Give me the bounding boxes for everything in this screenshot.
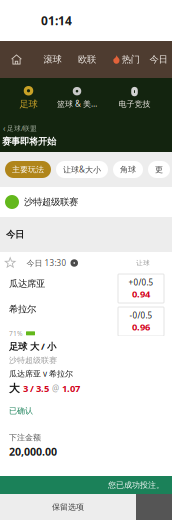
- button[interactable]: 热门: [103, 41, 149, 78]
- staticText: 欧联: [78, 54, 96, 65]
- staticText: 让球: [136, 259, 150, 267]
- button[interactable]: 篮球 & 美…: [57, 78, 97, 118]
- staticText: 让球&大小: [63, 164, 101, 175]
- staticText: 赛事即将开始: [2, 136, 56, 147]
- staticText: 大: [9, 382, 20, 395]
- button[interactable]: 首页: [0, 41, 34, 78]
- staticText: 71%: [9, 329, 23, 338]
- button[interactable]: 沙特超级联赛: [0, 187, 172, 217]
- button[interactable]: 主要玩法: [5, 161, 51, 178]
- staticText: @: [52, 383, 59, 394]
- staticText: ‹: [3, 123, 5, 134]
- button[interactable]: 更: [148, 161, 170, 178]
- staticText: 滚球: [43, 54, 61, 65]
- button[interactable]: 今日: [149, 41, 172, 78]
- button[interactable]: 让球&大小: [56, 161, 108, 178]
- staticText: 3 / 3.5: [23, 382, 49, 395]
- staticText: 足球: [19, 98, 37, 110]
- staticText: 0.96: [132, 321, 150, 333]
- button[interactable]: 足球: [0, 78, 57, 118]
- staticText: 今日: [149, 54, 167, 65]
- staticText: 瓜达席亚 v 希拉尔: [9, 368, 73, 379]
- staticText: 瓜达席亚: [9, 278, 45, 289]
- staticText: 已确认: [9, 406, 33, 416]
- staticText: 保留选项: [52, 502, 84, 512]
- staticText: -0/0.5: [129, 310, 152, 321]
- staticText: 20,000.00: [9, 445, 57, 459]
- staticText: 更: [155, 165, 163, 174]
- button[interactable]: 保留选项: [0, 494, 136, 520]
- staticText: 热门: [122, 54, 140, 65]
- staticText: 电子竞技: [118, 99, 150, 109]
- staticText: 今日: [6, 229, 24, 240]
- staticText: 主要玩法: [12, 165, 44, 174]
- staticText: +0/0.5: [128, 277, 153, 288]
- button[interactable]: 滚球: [34, 41, 70, 78]
- staticText: 今日 13:30: [26, 258, 66, 268]
- staticText: 您已成功投注。: [108, 480, 164, 490]
- staticText: 希拉尔: [9, 303, 36, 315]
- button[interactable]: 电子竞技: [97, 78, 172, 118]
- staticText: 下注金额: [9, 433, 41, 443]
- staticText: 沙特超级联赛: [24, 196, 78, 208]
- button[interactable]: +0/0.5: [118, 274, 164, 303]
- staticText: 0.94: [132, 288, 150, 300]
- button[interactable]: -0/0.5: [118, 307, 164, 336]
- staticText: 角球: [120, 165, 136, 174]
- button[interactable]: ‹: [0, 123, 37, 134]
- staticText: 沙特超级联赛: [9, 355, 57, 365]
- button[interactable]: 欧联: [70, 41, 103, 78]
- staticText: 01:14: [41, 12, 72, 28]
- staticText: 足球/联盟: [7, 124, 37, 133]
- staticText: 1.07: [62, 382, 80, 395]
- staticText: 足球 大 / 小: [9, 340, 56, 352]
- staticText: 篮球 & 美…: [57, 98, 97, 109]
- button[interactable]: 角球: [113, 161, 143, 178]
